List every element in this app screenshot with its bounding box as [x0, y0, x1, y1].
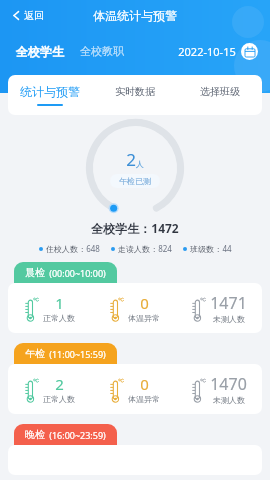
staticText: 44: [222, 243, 232, 254]
staticText: 晚检: [25, 428, 45, 441]
button[interactable]: 实时数据: [92, 75, 177, 115]
staticText: 2022-10-15: [178, 44, 236, 59]
staticText: 824: [158, 243, 172, 254]
staticText: (16:00~23:59): [49, 429, 106, 441]
staticText: 住校人数：: [46, 244, 86, 254]
staticText: (11:00~15:59): [49, 348, 106, 360]
button[interactable]: 全校教职: [78, 42, 126, 60]
staticText: 未测人数: [213, 395, 245, 405]
staticText: 选择班级: [200, 85, 240, 98]
button[interactable]: 午检已测: [110, 174, 160, 188]
button[interactable]: 返回: [8, 6, 48, 25]
staticText: 实时数据: [115, 85, 155, 98]
staticText: 全校学生：1472: [91, 220, 179, 236]
staticText: 2: [55, 374, 64, 394]
staticText: 正常人数: [43, 394, 75, 404]
button[interactable]: 午检: [8, 343, 262, 414]
staticText: 全校学生: [16, 44, 64, 59]
button[interactable]: 全校学生: [14, 42, 66, 61]
button[interactable]: 统计与预警: [8, 75, 92, 115]
staticText: 人: [136, 159, 144, 169]
staticText: 648: [86, 243, 100, 254]
staticText: (00:00~10:00): [49, 267, 106, 279]
staticText: 2: [126, 148, 136, 171]
other: Select date: [241, 43, 258, 60]
button[interactable]: 晚检: [8, 424, 262, 475]
staticText: 体温异常: [128, 313, 160, 323]
staticText: 0: [140, 374, 149, 394]
staticText: 1471: [210, 292, 247, 314]
staticText: 走读人数：: [118, 244, 158, 254]
staticText: 全校教职: [80, 44, 124, 58]
button[interactable]: 选择班级: [177, 75, 262, 115]
staticText: 晨检: [25, 266, 45, 279]
staticText: 1: [55, 293, 64, 313]
staticText: 1470: [210, 373, 247, 395]
staticText: 午检已测: [119, 176, 151, 186]
staticText: 统计与预警: [20, 84, 80, 99]
button[interactable]: 2022-10-15: [176, 42, 260, 61]
staticText: 午检: [25, 347, 45, 360]
staticText: 体温统计与预警: [93, 8, 177, 23]
staticText: 未测人数: [213, 314, 245, 324]
staticText: 体温异常: [128, 394, 160, 404]
staticText: 班级数：: [190, 244, 222, 254]
staticText: 正常人数: [43, 313, 75, 323]
staticText: 0: [140, 293, 149, 313]
staticText: 返回: [24, 9, 44, 22]
button[interactable]: 晨检: [8, 262, 262, 333]
